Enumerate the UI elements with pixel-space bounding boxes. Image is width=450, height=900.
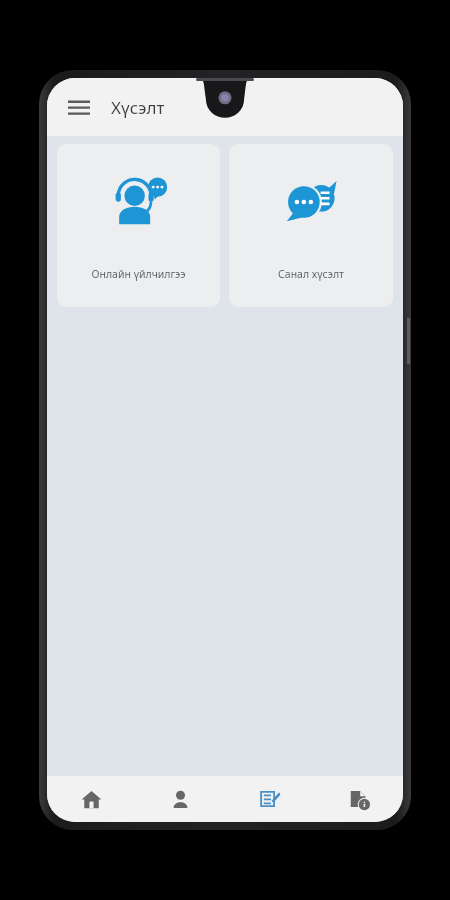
button[interactable]: Home	[47, 776, 136, 822]
staticText: Санал хүсэлт	[233, 267, 389, 281]
button[interactable]: Онлайн үйлчилгээ	[57, 144, 220, 307]
button[interactable]: Menu	[59, 87, 99, 127]
button[interactable]: Requests	[225, 776, 314, 822]
button[interactable]: Documents	[314, 776, 403, 822]
staticText: Хүсэлт	[111, 96, 165, 119]
button[interactable]: Profile	[136, 776, 225, 822]
staticText: Онлайн үйлчилгээ	[61, 267, 216, 281]
button[interactable]: Санал хүсэлт	[229, 144, 393, 307]
